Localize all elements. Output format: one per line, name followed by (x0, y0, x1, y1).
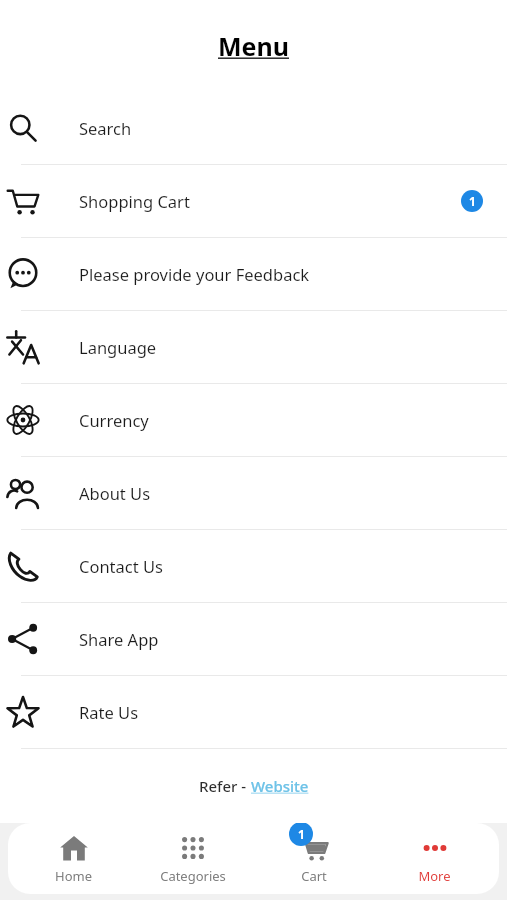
button[interactable]: Please provide your Feedback (0, 238, 507, 310)
button[interactable]: Contact Us (0, 530, 507, 602)
staticText: Menu (218, 29, 290, 63)
staticText: About Us (79, 482, 151, 504)
button[interactable]: Categories (138, 823, 248, 894)
staticText: Share App (79, 628, 159, 650)
button[interactable]: Rate Us (0, 676, 507, 748)
staticText: Home (55, 867, 92, 885)
button[interactable]: Home (18, 823, 128, 894)
staticText: More (418, 867, 451, 885)
staticText: Rate Us (79, 701, 139, 723)
staticText: Refer - (199, 776, 251, 796)
staticText: Contact Us (79, 555, 163, 577)
staticText: Currency (79, 409, 149, 431)
staticText: Categories (160, 867, 226, 885)
staticText: 1 (469, 193, 476, 209)
button[interactable]: Currency (0, 384, 507, 456)
staticText: Search (79, 117, 132, 139)
button[interactable]: Search (0, 92, 507, 164)
button[interactable]: Website (251, 776, 309, 796)
staticText: Language (79, 336, 157, 358)
button[interactable]: More (379, 823, 489, 894)
staticText: Cart (301, 867, 327, 885)
staticText: Shopping Cart (79, 190, 190, 212)
button[interactable]: 1 (259, 823, 369, 894)
staticText: Website (251, 776, 309, 796)
staticText: Please provide your Feedback (79, 263, 310, 285)
staticText: 1 (298, 826, 305, 842)
button[interactable]: Shopping Cart (0, 165, 507, 237)
button[interactable]: About Us (0, 457, 507, 529)
button[interactable]: Language (0, 311, 507, 383)
button[interactable]: Share App (0, 603, 507, 675)
